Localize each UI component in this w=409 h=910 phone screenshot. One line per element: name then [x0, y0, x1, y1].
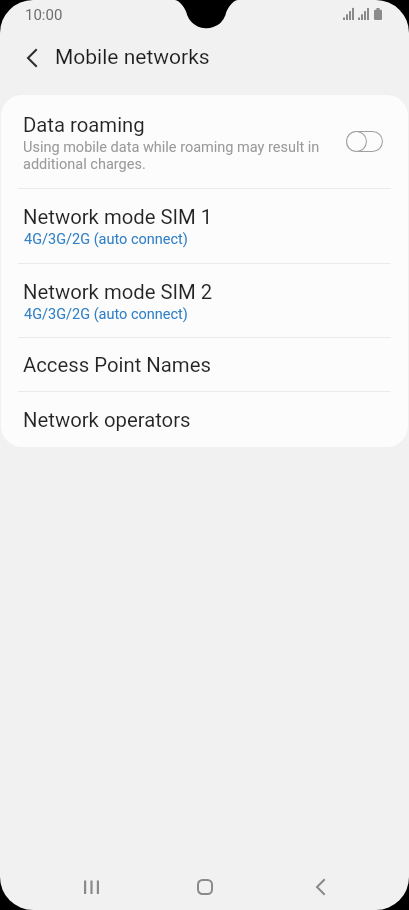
button[interactable]: Data roaming — [1, 95, 408, 188]
staticText: 10:00 — [25, 6, 63, 24]
staticText: Network operators — [23, 408, 191, 432]
staticText: Network mode SIM 1 — [23, 205, 213, 229]
staticText: 4G/3G/2G (auto connect) — [24, 306, 188, 323]
button[interactable]: Back — [296, 863, 344, 910]
staticText: Mobile networks — [55, 45, 210, 70]
button[interactable]: Recent apps — [67, 863, 115, 910]
button[interactable]: Network mode SIM 2 — [1, 264, 408, 337]
button[interactable]: Network mode SIM 1 — [1, 189, 408, 263]
button[interactable]: Navigate up — [8, 34, 56, 82]
staticText: Data roaming — [23, 113, 145, 137]
staticText: 4G/3G/2G (auto connect) — [24, 231, 188, 248]
button[interactable]: Network operators — [1, 392, 408, 447]
button[interactable]: Home — [181, 863, 229, 910]
staticText: Using mobile data while roaming may resu… — [23, 139, 320, 172]
staticText: Network mode SIM 2 — [23, 280, 213, 304]
button[interactable]: Access Point Names — [1, 338, 408, 391]
button[interactable]: Data roaming switch, off — [346, 131, 383, 152]
staticText: Access Point Names — [23, 353, 211, 377]
